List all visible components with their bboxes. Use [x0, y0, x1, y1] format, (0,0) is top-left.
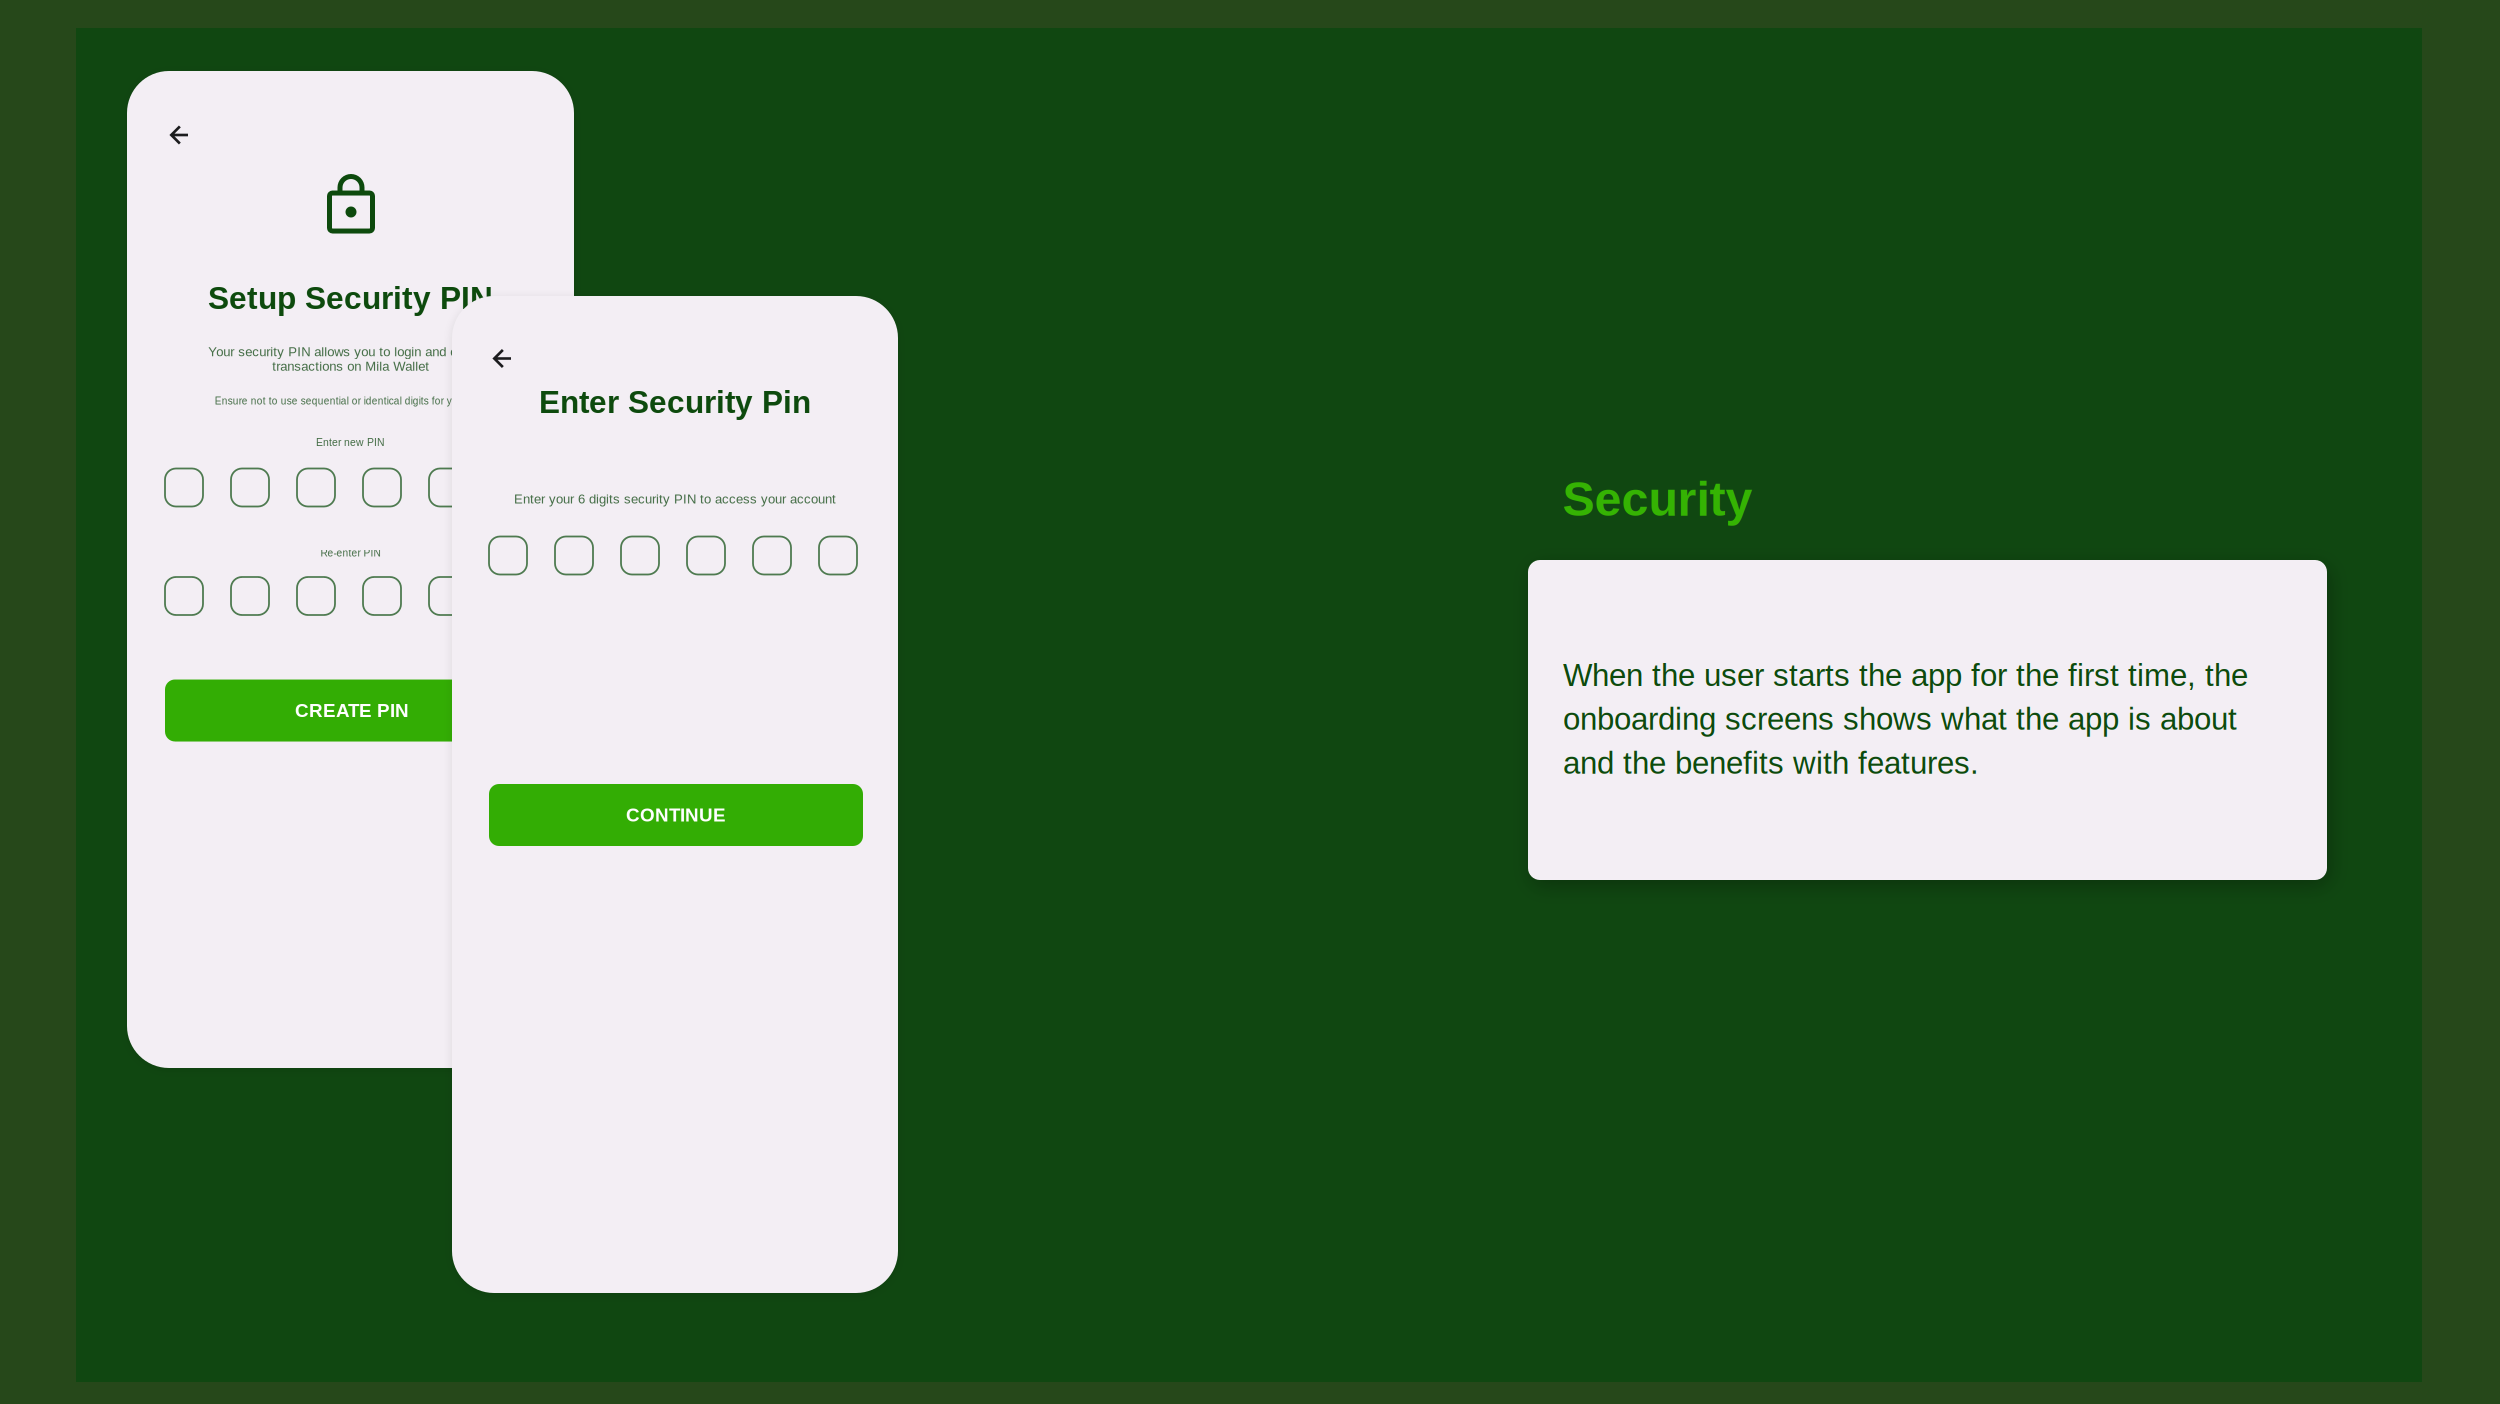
staticText: Enter new PIN	[316, 437, 385, 448]
button[interactable]: CONTINUE	[489, 784, 863, 846]
button[interactable]: Back	[487, 343, 517, 373]
staticText: Ensure not to use sequential or identica…	[214, 395, 486, 407]
staticText: CONTINUE	[626, 804, 726, 825]
button[interactable]: CREATE PIN	[165, 679, 539, 741]
staticText: Enter your 6 digits security PIN to acce…	[514, 492, 836, 506]
staticText: When the user starts the app for the fir…	[1563, 658, 2248, 780]
staticText: Security	[1562, 472, 1752, 526]
staticText: CREATE PIN	[295, 700, 409, 721]
button[interactable]: Back	[164, 120, 194, 150]
staticText: Your security PIN allows you to login an…	[208, 344, 493, 374]
staticText: Enter Security Pin	[539, 384, 811, 420]
staticText: Setup Security PIN	[208, 280, 493, 316]
staticText: Re-enter PIN	[320, 547, 380, 559]
